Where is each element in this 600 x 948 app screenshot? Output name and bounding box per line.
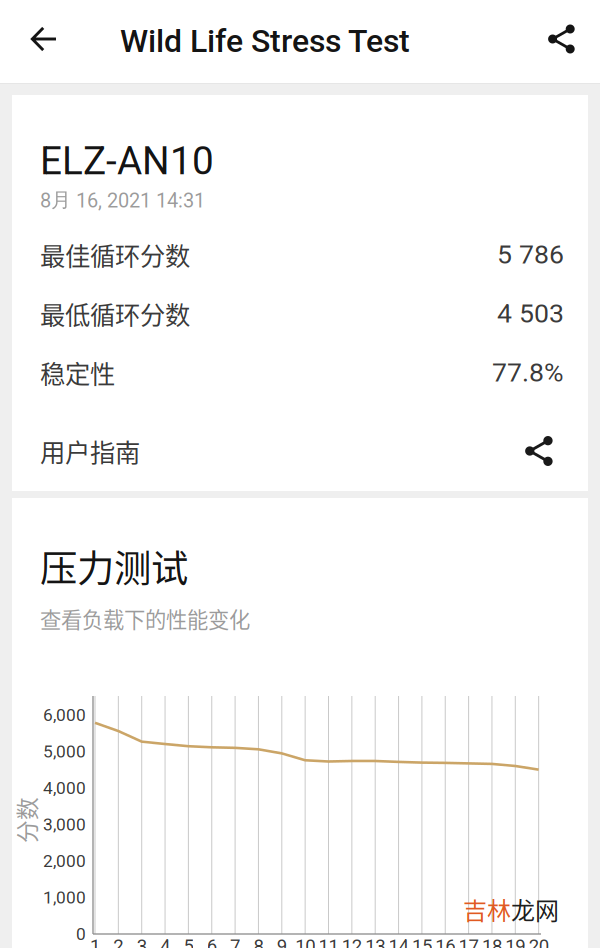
staticText: 6 bbox=[207, 935, 217, 948]
staticText: 0 bbox=[76, 924, 86, 944]
staticText: 12 bbox=[342, 935, 362, 948]
staticText: 分数 bbox=[3, 804, 49, 836]
staticText: 5,000 bbox=[43, 741, 86, 762]
staticText: 14 bbox=[389, 935, 409, 948]
staticText: 最低循环分数 bbox=[40, 295, 190, 332]
staticText: 5 786 bbox=[497, 239, 564, 270]
staticText: 3,000 bbox=[43, 814, 86, 835]
staticText: 7 bbox=[230, 935, 240, 948]
staticText: 13 bbox=[365, 935, 385, 948]
staticText: 8月 16, 2021 14:31 bbox=[40, 187, 205, 213]
staticText: 2 bbox=[113, 935, 123, 948]
staticText: 77.8% bbox=[492, 357, 564, 388]
staticText: 15 bbox=[412, 935, 432, 948]
staticText: 最佳循环分数 bbox=[40, 236, 190, 273]
staticText: 吉林 bbox=[463, 892, 511, 926]
staticText: 9 bbox=[277, 935, 287, 948]
staticText: 16 bbox=[435, 935, 455, 948]
staticText: 4,000 bbox=[43, 778, 86, 798]
staticText: 5 bbox=[183, 935, 193, 948]
staticText: 17 bbox=[459, 935, 479, 948]
staticText: Wild Life Stress Test bbox=[120, 22, 410, 60]
staticText: ELZ-AN10 bbox=[40, 138, 214, 184]
staticText: 2,000 bbox=[43, 851, 86, 871]
staticText: 用户指南 bbox=[40, 433, 140, 469]
staticText: 4 bbox=[160, 935, 170, 948]
staticText: 19 bbox=[505, 935, 525, 948]
staticText: 10 bbox=[295, 935, 315, 948]
staticText: 20 bbox=[529, 935, 549, 948]
button[interactable]: Back bbox=[13, 0, 75, 80]
staticText: 压力测试 bbox=[40, 539, 188, 593]
staticText: 1,000 bbox=[43, 887, 86, 908]
staticText: 8 bbox=[253, 935, 263, 948]
staticText: 1 bbox=[90, 935, 100, 948]
staticText: 6,000 bbox=[43, 705, 86, 725]
staticText: 4 503 bbox=[497, 298, 564, 329]
button[interactable]: Share bbox=[531, 0, 593, 80]
staticText: 龙网 bbox=[511, 892, 559, 926]
staticText: 18 bbox=[482, 935, 502, 948]
staticText: 11 bbox=[318, 935, 338, 948]
staticText: 查看负载下的性能变化 bbox=[40, 603, 250, 634]
staticText: 3 bbox=[137, 935, 147, 948]
staticText: 稳定性 bbox=[40, 354, 115, 391]
button[interactable]: 用户指南 bbox=[40, 402, 564, 500]
